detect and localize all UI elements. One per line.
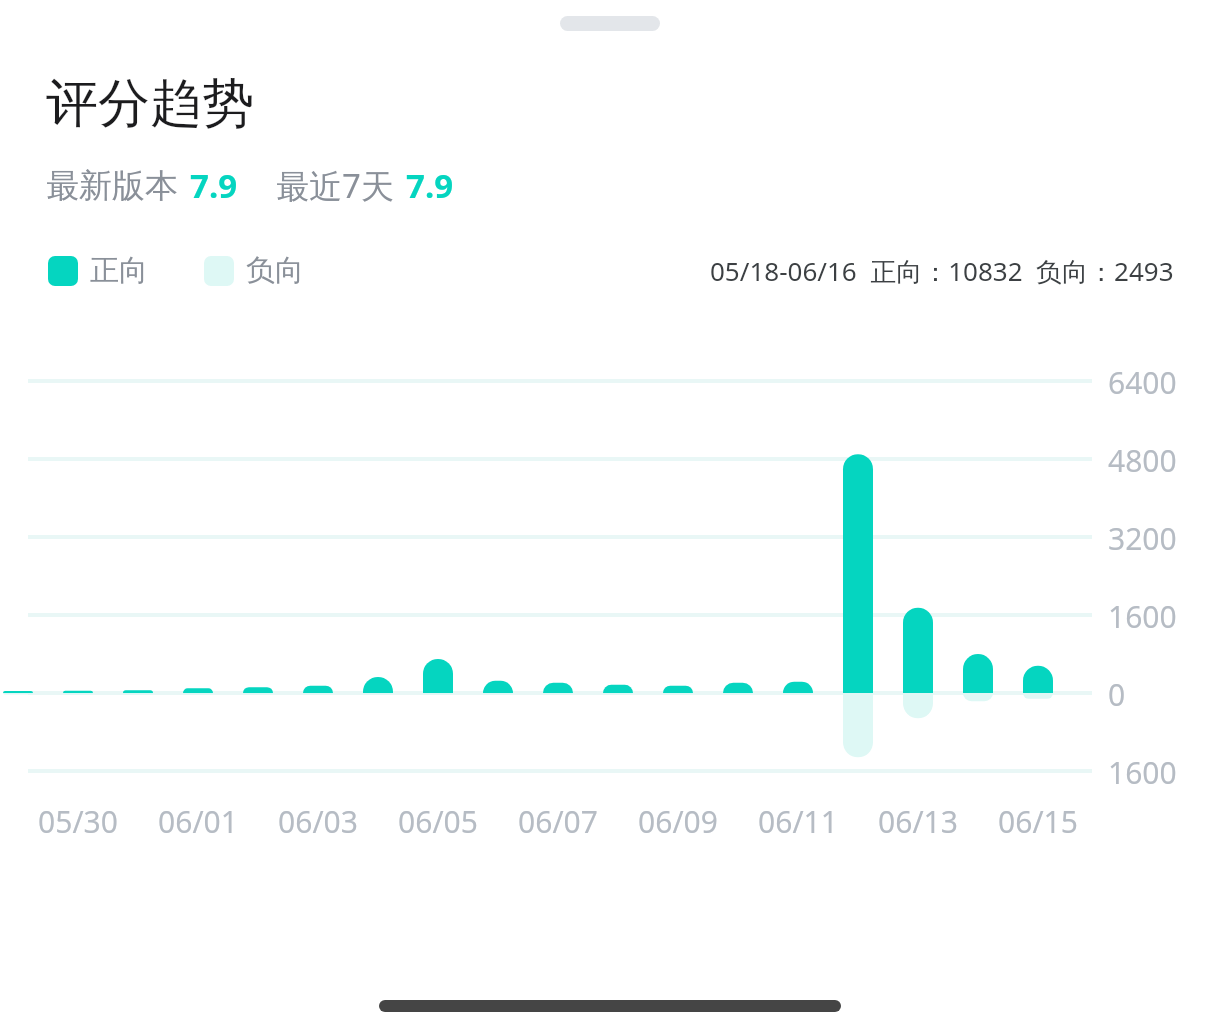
staticText: 05/18-06/16 正向：10832 负向：2493 (710, 253, 1174, 289)
staticText: 06/09 (618, 801, 738, 842)
staticText: 06/13 (858, 801, 978, 842)
staticText: 06/11 (738, 801, 858, 842)
staticText: 负向 (246, 252, 304, 289)
staticText: 06/15 (978, 801, 1098, 842)
staticText: 06/05 (378, 801, 498, 842)
staticText: 1600 (1108, 596, 1177, 637)
staticText: 3200 (1108, 518, 1177, 559)
staticText: 05/30 (18, 801, 138, 842)
staticText: 最新版本 (46, 165, 178, 207)
button[interactable]: Drag handle (560, 16, 660, 31)
staticText: 4800 (1108, 440, 1177, 481)
staticText: 06/01 (138, 801, 258, 842)
button[interactable]: 负向 (204, 252, 304, 289)
staticText: 7.9 (406, 163, 454, 208)
staticText: 0 (1108, 674, 1126, 715)
staticText: 1600 (1108, 752, 1177, 793)
button[interactable]: 正向 (48, 252, 148, 289)
staticText: 6400 (1108, 362, 1177, 403)
staticText: 最近7天 (276, 163, 394, 208)
staticText: 7.9 (190, 163, 238, 208)
staticText: 06/07 (498, 801, 618, 842)
staticText: 06/03 (258, 801, 378, 842)
staticText: 评分趋势 (46, 71, 254, 137)
staticText: 正向 (90, 252, 148, 289)
